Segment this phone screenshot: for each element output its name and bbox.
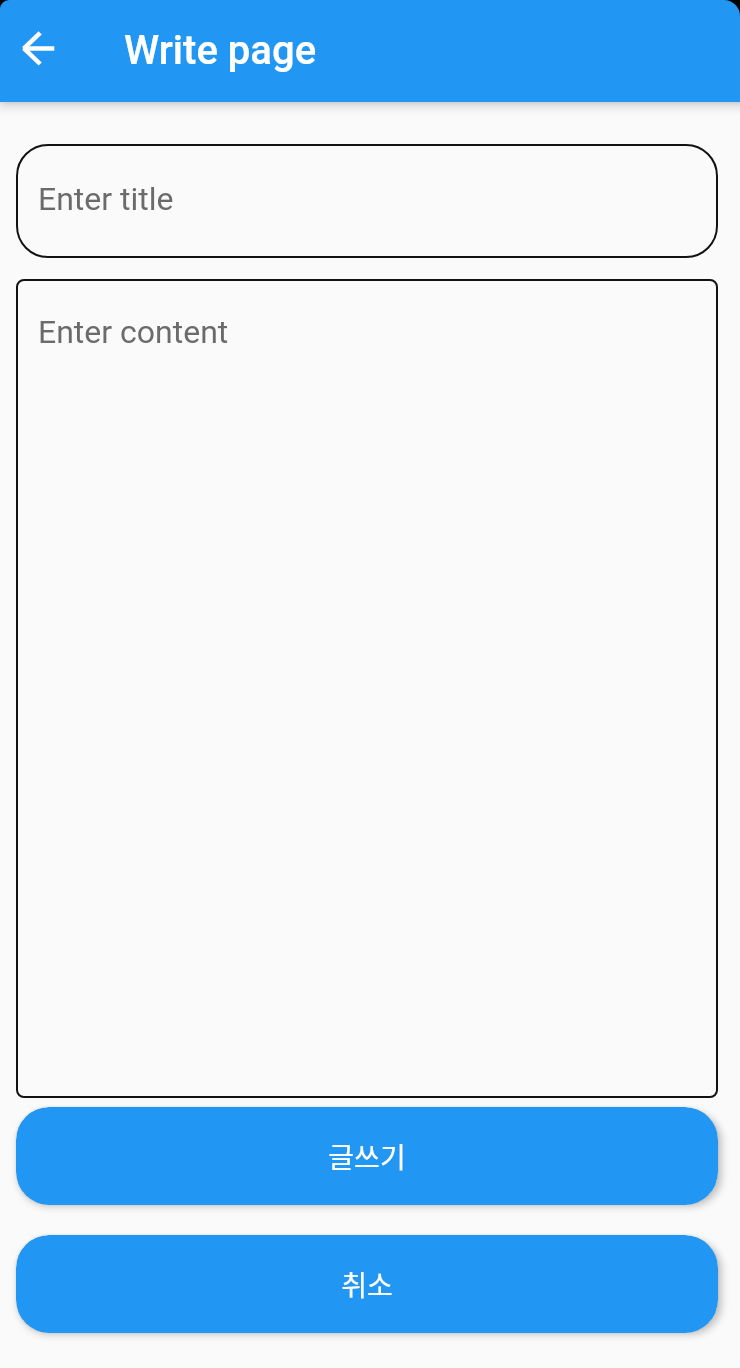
staticText: Write page	[124, 27, 317, 74]
staticText: 글쓰기	[328, 1136, 406, 1177]
button[interactable]: Enter title	[16, 144, 718, 258]
button[interactable]: 글쓰기	[16, 1107, 718, 1205]
button[interactable]: 취소	[16, 1235, 718, 1333]
staticText: 취소	[341, 1264, 393, 1305]
staticText: Enter content	[38, 313, 229, 351]
button[interactable]: Enter content	[16, 279, 718, 1098]
staticText: Enter title	[38, 180, 174, 218]
button[interactable]: Back	[0, 0, 66, 102]
